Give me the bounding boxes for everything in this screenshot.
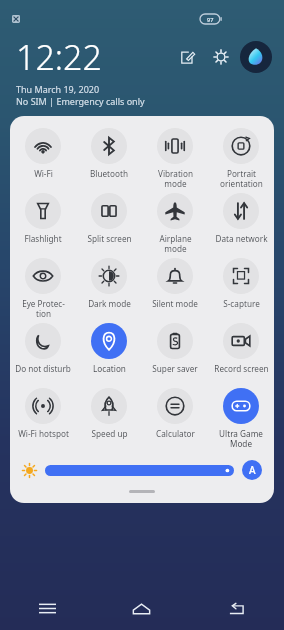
button[interactable]: Bluetooth <box>76 126 142 179</box>
button[interactable]: Do not disturb <box>10 321 76 374</box>
button[interactable]: Dark mode <box>76 256 142 309</box>
button[interactable]: Record screen <box>208 321 274 374</box>
button[interactable]: Flashlight <box>10 191 76 244</box>
staticText: Flashlight <box>24 233 62 244</box>
button[interactable]: Silent mode <box>142 256 208 309</box>
button[interactable]: Auto brightness <box>242 460 262 480</box>
staticText: Super saver <box>152 363 198 374</box>
button[interactable]: Edit quick settings <box>174 44 200 70</box>
button[interactable]: Vibration mode <box>142 126 208 190</box>
button[interactable]: Super saver <box>142 321 208 374</box>
button[interactable]: User account <box>240 41 272 73</box>
staticText: Ultra Game Mode <box>219 428 263 450</box>
button[interactable]: Recent apps <box>0 586 94 630</box>
button[interactable]: Brightness <box>45 465 234 476</box>
staticText: Calculator <box>156 428 195 439</box>
staticText: S-capture <box>223 298 260 309</box>
staticText: Dark mode <box>88 298 131 309</box>
staticText: Speed up <box>91 428 128 439</box>
button[interactable]: Portrait orientation <box>208 126 274 190</box>
staticText: Split screen <box>87 233 132 244</box>
staticText: Data network <box>215 233 268 244</box>
button[interactable]: Location <box>76 321 142 374</box>
staticText: Record screen <box>214 363 269 374</box>
staticText: Wi-Fi hotspot <box>18 428 69 439</box>
staticText: No SIM | Emergency calls only <box>16 95 145 107</box>
button[interactable]: Home <box>94 586 189 630</box>
staticText: 97 <box>207 16 214 23</box>
staticText: Do not disturb <box>15 363 71 374</box>
button[interactable]: Eye Protec- tion <box>10 256 76 320</box>
staticText: Location <box>93 363 126 374</box>
staticText: Thu March 19, 2020 <box>16 83 100 95</box>
staticText: Vibration mode <box>158 168 193 190</box>
button[interactable]: Wi-Fi <box>10 126 76 179</box>
staticText: Bluetooth <box>90 168 128 179</box>
button[interactable]: Ultra Game Mode <box>208 386 274 450</box>
button[interactable]: Back <box>189 586 284 630</box>
button[interactable]: Split screen <box>76 191 142 244</box>
button[interactable]: Calculator <box>142 386 208 439</box>
staticText: Eye Protec- tion <box>22 298 65 320</box>
button[interactable]: S-capture <box>208 256 274 309</box>
staticText: A <box>249 463 256 477</box>
button[interactable]: Speed up <box>76 386 142 439</box>
button[interactable]: Settings <box>208 44 234 70</box>
button[interactable]: Airplane mode <box>142 191 208 255</box>
staticText: Wi-Fi <box>34 168 53 179</box>
button[interactable]: Wi-Fi hotspot <box>10 386 76 439</box>
staticText: Airplane mode <box>159 233 192 255</box>
staticText: 12:22 <box>16 34 102 80</box>
button[interactable]: Data network <box>208 191 274 244</box>
staticText: Portrait orientation <box>220 168 263 190</box>
staticText: Silent mode <box>152 298 198 309</box>
